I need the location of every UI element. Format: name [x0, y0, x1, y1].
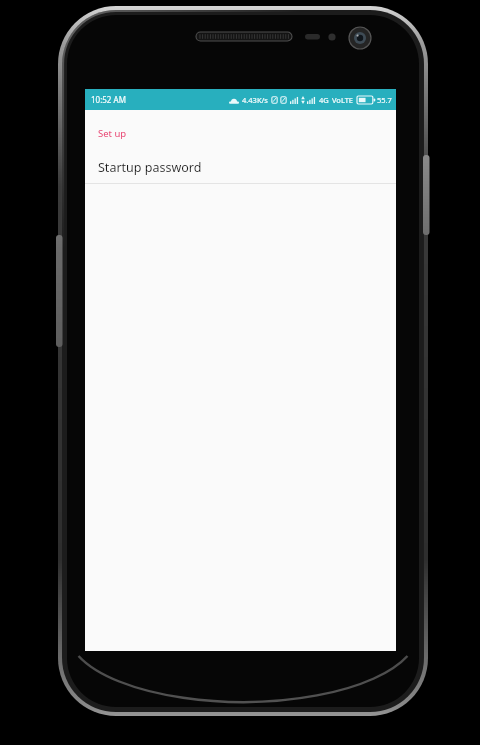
staticText: 55.7 — [377, 95, 392, 105]
staticText: Set up — [98, 127, 127, 140]
staticText: 10:52 AM — [91, 94, 126, 105]
staticText: 4.43K/s — [242, 95, 268, 105]
button[interactable]: Startup password — [85, 151, 396, 183]
staticText: Startup password — [98, 159, 202, 176]
staticText: VoLTE — [332, 95, 354, 105]
staticText: 4G — [319, 95, 329, 105]
